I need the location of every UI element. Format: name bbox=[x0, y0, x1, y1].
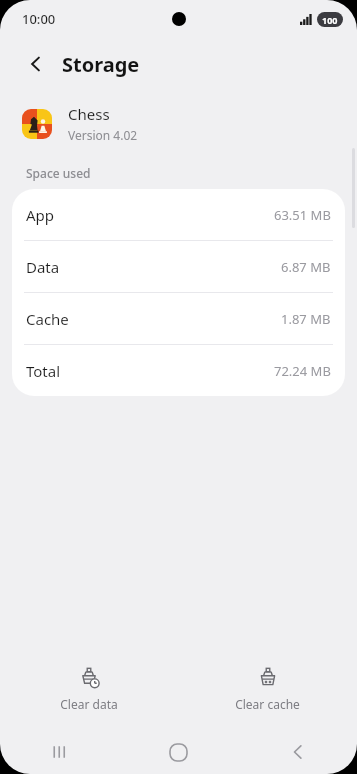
button[interactable]: Total bbox=[12, 345, 345, 396]
staticText: Data bbox=[26, 257, 60, 277]
button[interactable]: Back bbox=[238, 730, 357, 774]
staticText: 63.51 MB bbox=[274, 206, 331, 224]
staticText: Storage bbox=[62, 51, 140, 78]
staticText: Cache bbox=[26, 309, 69, 329]
staticText: Space used bbox=[26, 165, 91, 181]
button[interactable]: Clear cache bbox=[178, 661, 357, 718]
staticText: 1.87 MB bbox=[281, 310, 331, 328]
button[interactable]: Recent apps bbox=[0, 730, 119, 774]
staticText: 6.87 MB bbox=[281, 258, 331, 276]
staticText: Clear cache bbox=[235, 696, 300, 712]
button[interactable]: Clear data bbox=[0, 661, 178, 718]
button[interactable]: App bbox=[12, 189, 345, 240]
staticText: Version 4.02 bbox=[68, 127, 138, 143]
staticText: 100 bbox=[322, 14, 338, 26]
staticText: Chess bbox=[68, 104, 110, 124]
button[interactable]: Data bbox=[12, 241, 345, 292]
staticText: 72.24 MB bbox=[274, 362, 331, 380]
staticText: Total bbox=[26, 361, 61, 381]
button[interactable]: Cache bbox=[12, 293, 345, 344]
staticText: Clear data bbox=[60, 696, 118, 712]
button[interactable]: Back bbox=[18, 46, 54, 82]
staticText: App bbox=[26, 205, 55, 225]
staticText: 10:00 bbox=[22, 10, 56, 28]
button[interactable]: Home bbox=[119, 730, 238, 774]
